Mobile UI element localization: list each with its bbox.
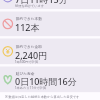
staticText: 1箱500円で計算	[15, 59, 39, 63]
staticText: 112本	[15, 21, 40, 33]
staticText: 禁煙を続けています	[15, 4, 45, 8]
staticText: ※ 数値は設定した銘柄と本数から算出した目安です	[5, 95, 80, 99]
staticText: 1本あたり11分で計算	[15, 86, 47, 90]
staticText: 7日11時15分	[15, 0, 68, 5]
button[interactable]: 節約できた本数	[0, 12, 100, 37]
staticText: 節約できた本数	[16, 16, 43, 21]
button[interactable]: 7日11時15分	[0, 0, 100, 9]
button[interactable]: 節約できた金額	[0, 39, 100, 65]
staticText: 延びた寿命	[16, 71, 35, 76]
staticText: 節約できた金額	[16, 44, 43, 49]
button[interactable]: 延びた寿命	[0, 67, 100, 93]
staticText: 0日10時間16分	[15, 75, 77, 87]
staticText: 2,240円	[15, 49, 48, 61]
